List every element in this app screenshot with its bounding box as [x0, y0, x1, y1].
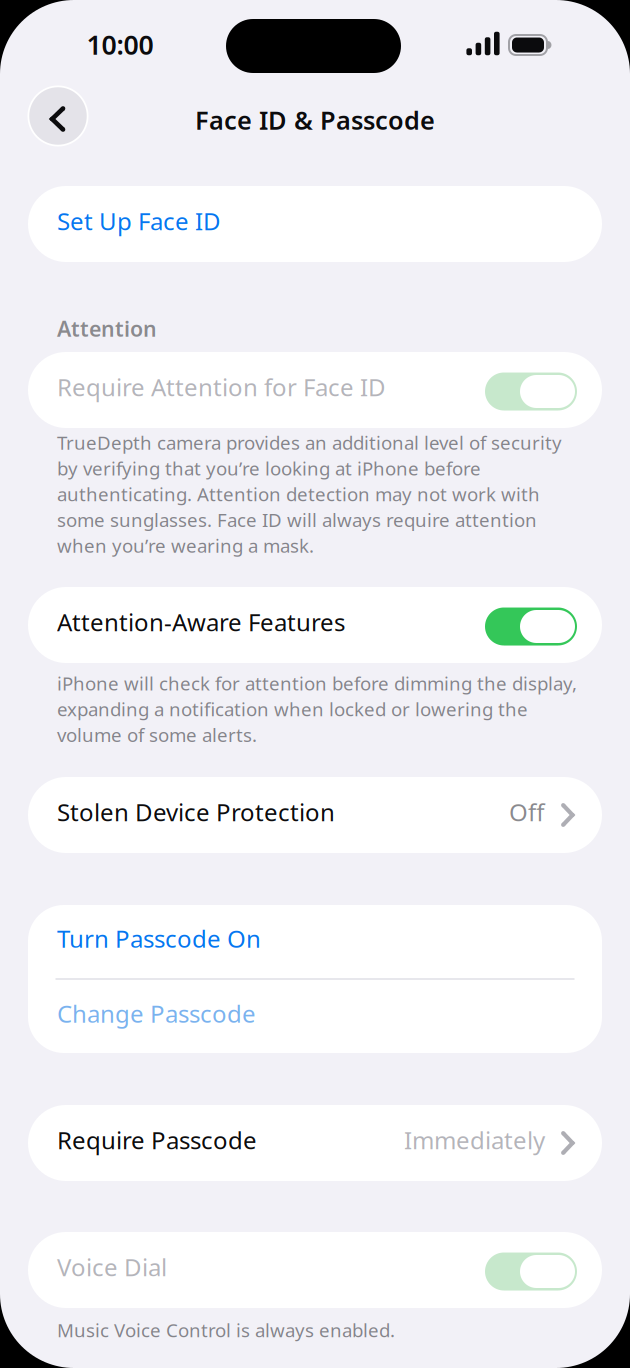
button[interactable]: Voice Dial [28, 1232, 602, 1308]
staticText: Require Passcode [57, 1124, 257, 1156]
staticText: Change Passcode [57, 998, 256, 1029]
button[interactable]: Require Passcode [28, 1105, 602, 1181]
staticText: Off [509, 796, 545, 828]
staticText: Face ID & Passcode [195, 103, 435, 137]
button[interactable]: Attention-Aware Features [28, 587, 602, 663]
staticText: Turn Passcode On [57, 923, 261, 954]
staticText: Voice Dial [57, 1251, 167, 1283]
button[interactable]: Turn Passcode On [28, 905, 602, 978]
button[interactable]: Change Passcode [28, 980, 602, 1053]
staticText: Require Attention for Face ID [57, 371, 386, 403]
staticText: Attention [57, 314, 157, 343]
staticText: TrueDepth camera provides an additional … [57, 430, 562, 558]
button[interactable]: Set Up Face ID [28, 186, 602, 262]
button[interactable]: Back [27, 85, 89, 147]
staticText: Attention-Aware Features [57, 606, 345, 638]
button[interactable]: Stolen Device Protection [28, 777, 602, 853]
staticText: Music Voice Control is always enabled. [57, 1318, 395, 1342]
staticText: Set Up Face ID [57, 205, 221, 237]
staticText: Stolen Device Protection [57, 796, 335, 828]
staticText: 10:00 [86, 27, 153, 62]
staticText: Immediately [404, 1124, 545, 1156]
staticText: iPhone will check for attention before d… [57, 671, 577, 747]
button[interactable]: Require Attention for Face ID [28, 352, 602, 428]
